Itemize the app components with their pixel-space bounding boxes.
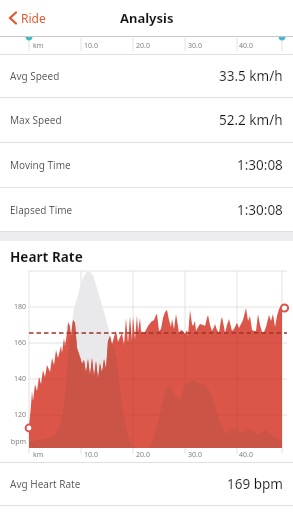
staticText: Avg Heart Rate [10,477,81,491]
staticText: 20.0 [136,41,150,51]
staticText: 10.0 [84,41,98,51]
staticText: 169 bpm [227,475,283,493]
staticText: 1:30:08 [237,156,283,174]
staticText: 10.0 [84,450,98,460]
staticText: 33.5 km/h [219,67,283,85]
staticText: 140 [13,374,26,384]
button[interactable]: Avg Heart Rate [0,463,293,505]
staticText: 30.0 [188,450,202,460]
button[interactable]: Elapsed Time [0,188,293,231]
staticText: bpm [10,437,26,447]
staticText: 160 [13,338,26,348]
staticText: Heart Rate [10,248,83,266]
button[interactable]: Max Speed [0,98,293,142]
staticText: 40.0 [239,41,253,51]
staticText: Elapsed Time [10,203,73,217]
staticText: Moving Time [10,158,71,172]
staticText: 40.0 [239,450,253,460]
staticText: km [33,41,44,51]
staticText: 20.0 [136,450,150,460]
staticText: km [33,450,44,460]
staticText: Analysis [120,9,174,27]
staticText: Ride [21,10,46,26]
staticText: 52.2 km/h [219,111,283,129]
staticText: Max Speed [10,113,62,127]
button[interactable]: Moving Time [0,143,293,187]
staticText: Avg Speed [10,69,60,83]
staticText: 120 [13,410,26,420]
button[interactable]: Ride [0,10,46,26]
staticText: 1:30:08 [237,201,283,219]
staticText: 180 [13,302,26,312]
staticText: 30.0 [188,41,202,51]
button[interactable]: Avg Speed [0,55,293,97]
